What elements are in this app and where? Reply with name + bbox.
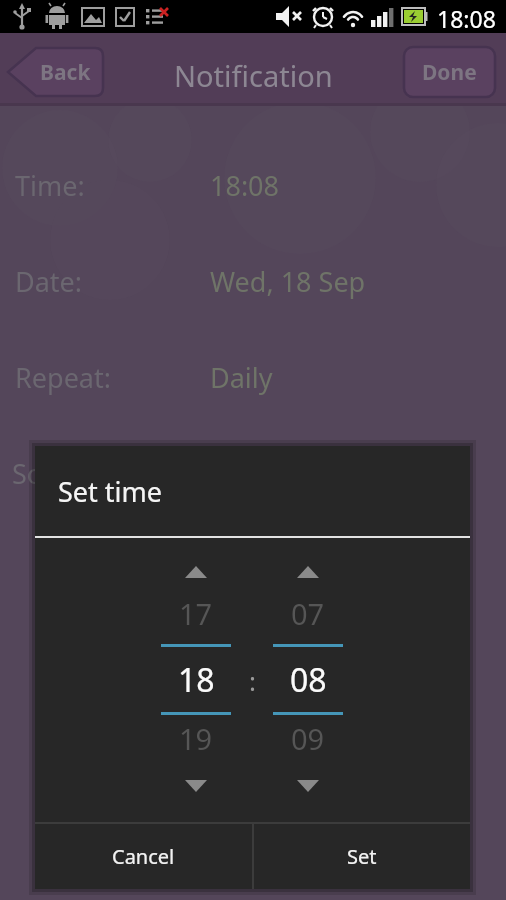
- button[interactable]: Date:: [15, 261, 195, 301]
- button[interactable]: 17: [161, 592, 231, 634]
- staticText: Set: [347, 843, 377, 870]
- staticText: Daily: [210, 359, 273, 396]
- staticText: 19: [179, 719, 213, 758]
- staticText: Date:: [15, 263, 83, 300]
- button[interactable]: 07: [273, 592, 343, 634]
- button[interactable]: Repeat:: [15, 357, 195, 397]
- button[interactable]: 19: [161, 717, 231, 759]
- staticText: 09: [291, 719, 325, 758]
- staticText: :: [249, 663, 256, 698]
- button[interactable]: Set: [254, 823, 470, 889]
- button[interactable]: Time:: [15, 165, 195, 205]
- button[interactable]: 18: [161, 649, 231, 711]
- staticText: Set time: [58, 473, 163, 510]
- staticText: 17: [179, 594, 213, 633]
- button[interactable]: Back: [8, 46, 103, 98]
- staticText: 08: [290, 658, 327, 702]
- staticText: Sound:: [12, 455, 101, 492]
- button[interactable]: Cancel: [35, 823, 252, 889]
- staticText: 18:08: [210, 167, 280, 204]
- staticText: Repeat:: [15, 359, 111, 396]
- button[interactable]: 09: [273, 717, 343, 759]
- staticText: 18:08: [437, 3, 496, 31]
- staticText: Done: [422, 58, 477, 87]
- staticText: Notification: [174, 56, 333, 95]
- staticText: 07: [291, 594, 325, 633]
- button[interactable]: 08: [273, 649, 343, 711]
- staticText: 18: [178, 658, 215, 702]
- staticText: Time:: [15, 167, 85, 204]
- staticText: Wed, 18 Sep: [210, 263, 366, 300]
- button[interactable]: Done: [403, 46, 496, 98]
- staticText: Cancel: [112, 843, 175, 870]
- staticText: Back: [40, 58, 91, 87]
